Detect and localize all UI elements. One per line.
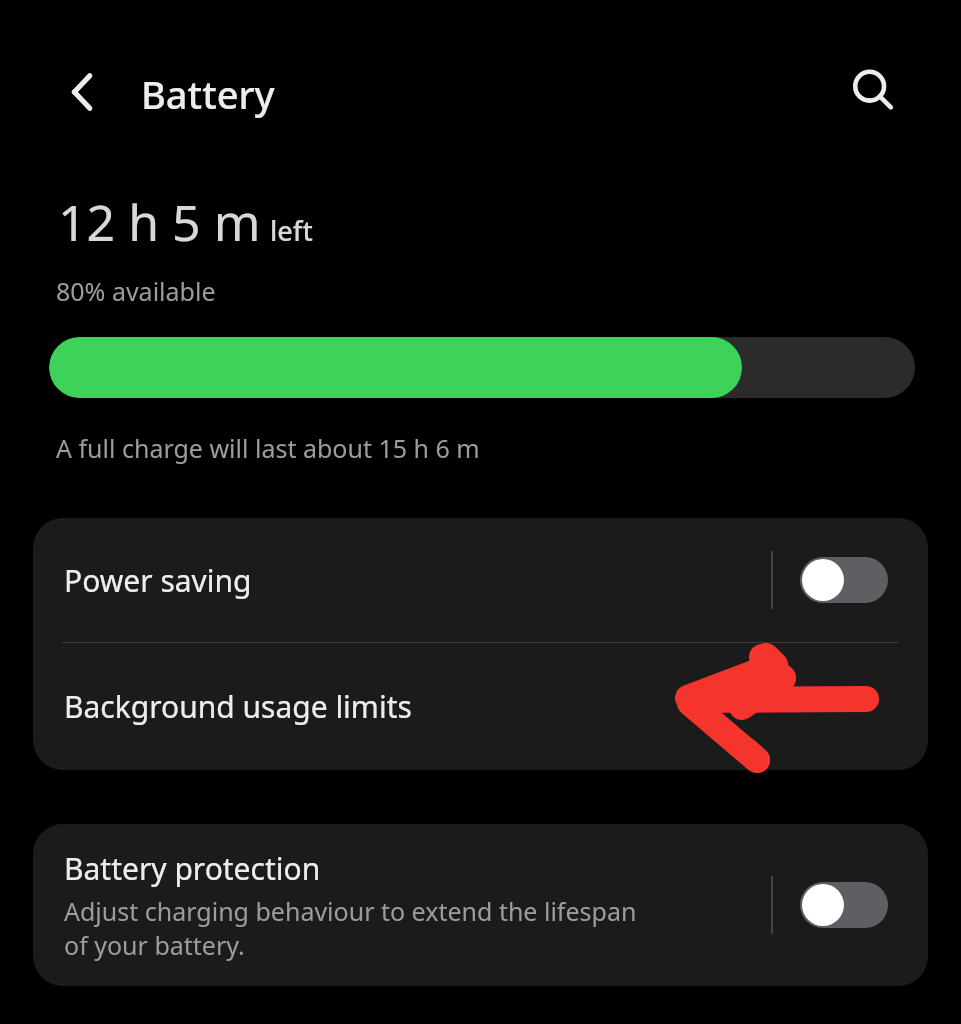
- button[interactable]: Toggle off: [800, 882, 888, 928]
- staticText: 12 h 5 m: [58, 188, 261, 256]
- staticText: Adjust charging behaviour to extend the …: [64, 894, 664, 962]
- button[interactable]: Background usage limits: [33, 643, 928, 770]
- staticText: A full charge will last about 15 h 6 m: [56, 431, 480, 465]
- button[interactable]: Toggle off: [800, 557, 888, 603]
- button[interactable]: Battery protection: [33, 824, 928, 986]
- button[interactable]: Search: [837, 55, 909, 127]
- staticText: Battery: [141, 68, 275, 120]
- button[interactable]: Power saving: [33, 518, 928, 642]
- button[interactable]: Back: [48, 56, 120, 128]
- staticText: Battery protection: [64, 848, 321, 889]
- staticText: Background usage limits: [64, 686, 412, 727]
- staticText: Power saving: [64, 560, 252, 601]
- staticText: left: [270, 212, 313, 249]
- staticText: 80% available: [56, 274, 216, 308]
